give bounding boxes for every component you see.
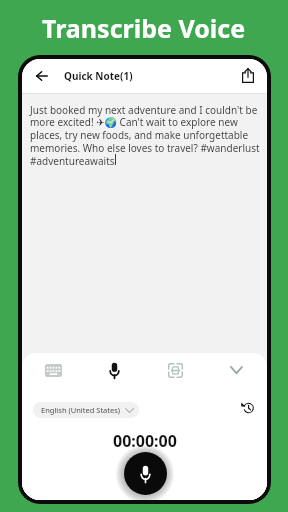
button[interactable]: Keyboard xyxy=(22,353,84,387)
button[interactable]: Share xyxy=(239,59,267,93)
button[interactable]: Scan xyxy=(145,353,206,387)
staticText: Just booked my next adventure and I coul… xyxy=(30,103,262,168)
button[interactable]: History xyxy=(238,398,258,418)
button[interactable]: Collapse xyxy=(206,353,267,387)
staticText: English (United States) xyxy=(41,405,121,415)
button[interactable]: English (United States) xyxy=(33,402,139,418)
staticText: Transcribe Voice xyxy=(42,11,246,45)
button[interactable]: Back xyxy=(22,59,56,93)
staticText: 00:00:00 xyxy=(113,430,177,452)
staticText: Quick Note(1) xyxy=(64,69,133,83)
button[interactable]: Microphone xyxy=(84,353,145,387)
button[interactable]: Record xyxy=(124,452,167,495)
